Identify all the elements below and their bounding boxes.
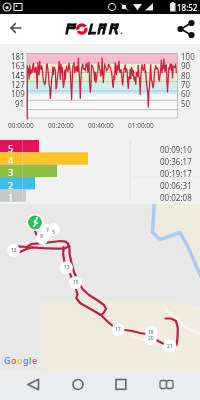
staticText: o	[11, 354, 17, 366]
staticText: 80	[181, 70, 191, 81]
button[interactable]: G	[0, 204, 200, 371]
staticText: G	[4, 354, 11, 366]
staticText: o	[17, 354, 23, 366]
button[interactable]: Home	[60, 371, 96, 400]
staticText: 00:06:31	[160, 180, 192, 191]
staticText: 20	[148, 335, 154, 342]
staticText: 9	[40, 233, 43, 240]
staticText: 01:00:00	[128, 121, 154, 130]
button[interactable]: Recent apps	[103, 371, 139, 400]
staticText: 00:00:00	[8, 121, 34, 130]
staticText: 181	[11, 51, 25, 62]
button[interactable]: Switch keyboard	[149, 371, 185, 400]
staticText: 4	[8, 154, 14, 166]
staticText: 100	[181, 51, 195, 62]
staticText: 109	[11, 88, 25, 99]
staticText: 3	[8, 166, 14, 178]
staticText: 00:20:00	[48, 121, 74, 130]
staticText: 145	[11, 70, 25, 81]
button[interactable]: Back	[2, 14, 28, 44]
staticText: 15	[73, 279, 79, 286]
staticText: 12	[11, 247, 17, 254]
staticText: 127	[11, 79, 25, 90]
staticText: 19	[148, 329, 154, 336]
button[interactable]: Back	[16, 371, 52, 400]
staticText: 70	[181, 79, 191, 90]
staticText: 1	[8, 191, 14, 203]
staticText: 00:02:08	[160, 192, 192, 203]
staticText: 00:19:17	[160, 168, 192, 179]
staticText: 18:52	[177, 2, 198, 13]
staticText: l	[29, 354, 32, 366]
staticText: 50	[181, 98, 191, 109]
staticText: 91	[15, 98, 25, 109]
staticText: 90	[181, 60, 191, 71]
staticText: 163	[11, 60, 25, 71]
staticText: g	[23, 354, 29, 366]
staticText: 2	[8, 179, 14, 191]
staticText: 13	[64, 264, 70, 271]
staticText: 00:36:17	[160, 156, 192, 167]
staticText: e	[32, 354, 38, 366]
staticText: 17	[115, 326, 121, 333]
staticText: 60	[181, 88, 191, 99]
staticText: 00:09:10	[160, 144, 192, 155]
staticText: 00:40:00	[88, 121, 114, 130]
staticText: 5	[52, 229, 55, 236]
staticText: 7	[46, 227, 49, 234]
staticText: 5	[8, 142, 14, 154]
staticText: 21	[167, 343, 173, 350]
button[interactable]: Share	[174, 14, 200, 44]
